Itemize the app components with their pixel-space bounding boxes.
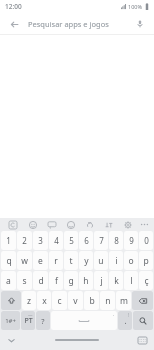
- staticText: 5: [69, 235, 74, 246]
- button[interactable]: 4: [49, 231, 63, 250]
- staticText: r: [54, 255, 58, 267]
- staticText: d: [38, 275, 44, 287]
- staticText: Pesquisar apps e jogos: [28, 19, 109, 29]
- button[interactable]: 6: [79, 231, 93, 250]
- button[interactable]: Emoji: [23, 218, 42, 231]
- staticText: 6: [84, 235, 89, 246]
- staticText: 1: [6, 235, 11, 246]
- button[interactable]: t: [64, 251, 78, 270]
- staticText: n: [105, 295, 111, 307]
- staticText: t: [69, 255, 73, 267]
- button[interactable]: x: [37, 291, 51, 310]
- staticText: 8: [114, 235, 119, 246]
- staticText: i: [115, 255, 118, 267]
- staticText: e: [38, 255, 43, 267]
- button[interactable]: i: [109, 251, 123, 270]
- staticText: 4: [54, 235, 59, 246]
- button[interactable]: 0: [139, 231, 153, 250]
- button[interactable]: Backspace: [132, 291, 153, 310]
- button[interactable]: p: [139, 251, 153, 270]
- button[interactable]: Search: [133, 311, 153, 330]
- button[interactable]: Space: [51, 311, 117, 330]
- staticText: l: [130, 275, 133, 287]
- button[interactable]: k: [109, 271, 123, 290]
- button[interactable]: 2: [17, 231, 32, 250]
- button[interactable]: e: [33, 251, 48, 270]
- staticText: —: [28, 312, 33, 318]
- button[interactable]: Hide keyboard: [5, 334, 18, 347]
- button[interactable]: b: [84, 291, 99, 310]
- button[interactable]: y: [79, 251, 93, 270]
- button[interactable]: 1: [1, 231, 16, 250]
- staticText: s: [22, 275, 27, 287]
- button[interactable]: l: [124, 271, 138, 290]
- staticText: a: [6, 275, 11, 287]
- button[interactable]: Shift: [1, 291, 21, 310]
- staticText: c: [57, 295, 62, 307]
- button[interactable]: More: [137, 218, 151, 231]
- staticText: PT: [24, 316, 33, 326]
- staticText: .: [124, 315, 127, 326]
- staticText: j: [100, 275, 103, 287]
- staticText: y: [84, 255, 89, 267]
- button[interactable]: ?: [36, 311, 50, 330]
- button[interactable]: 8: [109, 231, 123, 250]
- staticText: 9: [129, 235, 134, 246]
- button[interactable]: 9: [124, 231, 138, 250]
- button[interactable]: v: [68, 291, 83, 310]
- staticText: o: [128, 255, 134, 267]
- button[interactable]: d: [33, 271, 48, 290]
- button[interactable]: Emoji kitchen: [61, 218, 80, 231]
- staticText: x: [42, 295, 47, 307]
- staticText: 12:00: [5, 2, 22, 11]
- button[interactable]: 5: [64, 231, 78, 250]
- button[interactable]: z: [22, 291, 36, 310]
- button[interactable]: c: [52, 291, 67, 310]
- button[interactable]: q: [1, 251, 16, 270]
- button[interactable]: Pesquisar apps e jogos: [28, 13, 133, 34]
- button[interactable]: r: [49, 251, 63, 270]
- button[interactable]: 7: [94, 231, 108, 250]
- staticText: 2: [22, 235, 27, 246]
- button[interactable]: w: [17, 251, 32, 270]
- button[interactable]: 3: [33, 231, 48, 250]
- button[interactable]: Switch keyboard: [136, 334, 149, 347]
- staticText: 100%: [128, 3, 143, 10]
- button[interactable]: Voice search: [133, 17, 147, 31]
- button[interactable]: !: [118, 311, 132, 330]
- staticText: w: [21, 255, 28, 267]
- staticText: b: [89, 295, 95, 307]
- staticText: !: [128, 312, 130, 318]
- button[interactable]: m: [116, 291, 131, 310]
- button[interactable]: g: [64, 271, 78, 290]
- button[interactable]: a: [1, 271, 16, 290]
- staticText: u: [98, 255, 104, 267]
- staticText: g: [68, 275, 74, 287]
- staticText: p: [143, 255, 149, 267]
- staticText: z: [27, 295, 31, 307]
- staticText: v: [73, 295, 78, 307]
- button[interactable]: Gboard: [3, 218, 23, 231]
- staticText: 0: [144, 235, 149, 246]
- button[interactable]: GIF: [42, 218, 61, 231]
- button[interactable]: Stickers: [80, 218, 99, 231]
- staticText: q: [6, 255, 12, 267]
- button[interactable]: Back: [7, 17, 21, 31]
- button[interactable]: Settings: [118, 218, 137, 231]
- staticText: ç: [144, 275, 149, 287]
- staticText: k: [114, 275, 119, 287]
- staticText: ?: [41, 316, 45, 326]
- button[interactable]: j: [94, 271, 108, 290]
- button[interactable]: u: [94, 251, 108, 270]
- button[interactable]: o: [124, 251, 138, 270]
- button[interactable]: f: [49, 271, 63, 290]
- button[interactable]: ç: [139, 271, 153, 290]
- staticText: 7: [99, 235, 104, 246]
- button[interactable]: —: [21, 311, 35, 330]
- button[interactable]: 1#+: [1, 311, 20, 330]
- button[interactable]: Translate: [99, 218, 118, 231]
- button[interactable]: h: [79, 271, 93, 290]
- button[interactable]: n: [100, 291, 115, 310]
- staticText: 1#+: [5, 317, 16, 325]
- button[interactable]: s: [17, 271, 32, 290]
